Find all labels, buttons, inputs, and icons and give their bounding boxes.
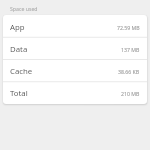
staticText: Data	[10, 44, 28, 55]
staticText: Cache	[10, 66, 33, 77]
staticText: 210 MB	[121, 90, 140, 97]
staticText: Total	[10, 88, 28, 99]
staticText: Space used	[10, 5, 38, 12]
staticText: 72.59 MB	[117, 24, 140, 31]
staticText: 137 MB	[121, 46, 140, 53]
staticText: 38.66 KB	[118, 68, 140, 75]
button[interactable]: Cache	[3, 60, 147, 82]
button[interactable]: Total	[3, 82, 147, 104]
button[interactable]: App	[3, 16, 147, 38]
button[interactable]: Data	[3, 38, 147, 60]
staticText: App	[10, 22, 25, 33]
